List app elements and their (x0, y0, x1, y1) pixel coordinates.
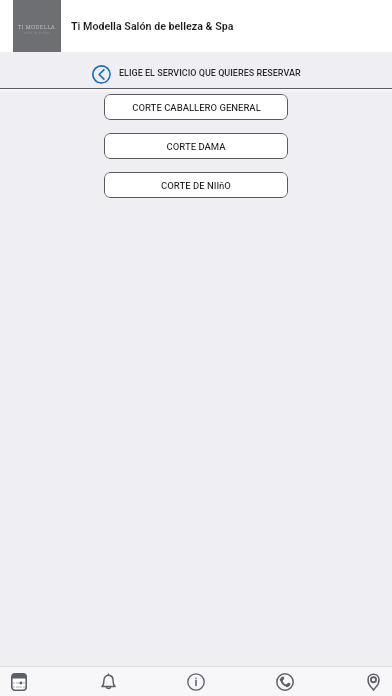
button[interactable]: Calendar (6, 667, 32, 696)
button[interactable]: CORTE CABALLERO GENERAL (104, 94, 288, 120)
staticText: TI MODELLA (18, 23, 56, 31)
button[interactable]: CORTE DAMA (104, 133, 288, 159)
staticText: CORTE DE NIIñO (161, 180, 231, 191)
button[interactable]: Notifications (95, 667, 121, 696)
button[interactable]: Call (272, 667, 298, 696)
staticText: salón de belleza (24, 31, 51, 34)
button[interactable]: Back (91, 64, 111, 84)
button[interactable]: Location (360, 667, 386, 696)
button[interactable]: CORTE DE NIIñO (104, 172, 288, 198)
staticText: CORTE CABALLERO GENERAL (132, 102, 261, 113)
staticText: CORTE DAMA (166, 141, 226, 152)
staticText: ELIGE EL SERVICIO QUE QUIERES RESERVAR (119, 68, 301, 79)
button[interactable]: Information (183, 667, 209, 696)
staticText: Ti Modella Salón de belleza & Spa (71, 20, 234, 33)
